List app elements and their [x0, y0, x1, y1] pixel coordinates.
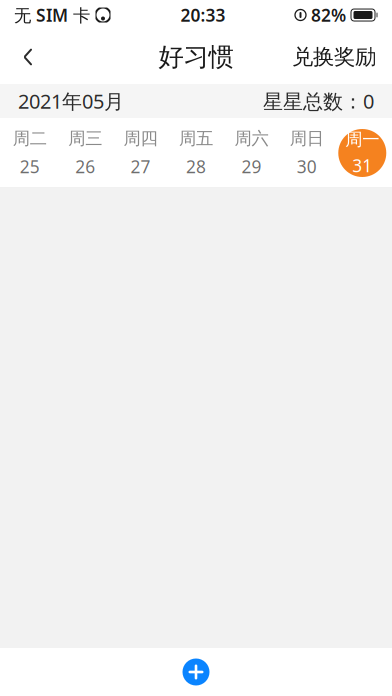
staticText: 星星总数：0: [263, 88, 374, 114]
button[interactable]: 添加习惯: [174, 650, 218, 694]
button[interactable]: 周四: [113, 129, 168, 177]
staticText: 周日: [290, 128, 324, 149]
staticText: 29: [241, 155, 261, 178]
staticText: 周二: [13, 128, 47, 149]
staticText: 82%: [311, 3, 346, 26]
button[interactable]: 周三: [57, 129, 113, 177]
button[interactable]: 周六: [224, 129, 279, 177]
staticText: 27: [131, 155, 151, 178]
staticText: 周一: [345, 129, 379, 150]
staticText: 周三: [68, 128, 102, 149]
button[interactable]: 兑换奖励: [282, 35, 386, 79]
staticText: 兑换奖励: [292, 44, 376, 70]
staticText: 30: [297, 155, 317, 178]
button[interactable]: 周二: [2, 129, 57, 177]
staticText: 周六: [234, 128, 268, 149]
staticText: 2021年05月: [18, 88, 124, 114]
staticText: 26: [75, 155, 95, 178]
staticText: 28: [186, 155, 206, 178]
staticText: 20:33: [180, 3, 225, 26]
staticText: 25: [20, 155, 40, 178]
button[interactable]: 返回: [6, 35, 50, 79]
staticText: 周五: [179, 128, 213, 149]
button[interactable]: 周日: [279, 129, 334, 177]
staticText: 好习惯: [158, 41, 233, 72]
staticText: 无 SIM 卡: [14, 3, 90, 26]
button[interactable]: 周一: [335, 129, 390, 177]
staticText: 周四: [124, 128, 158, 149]
staticText: 31: [352, 154, 372, 177]
button[interactable]: 周五: [168, 129, 224, 177]
